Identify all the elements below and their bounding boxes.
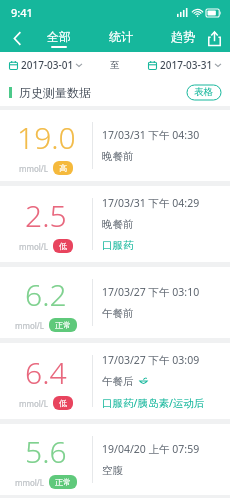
staticText: 17/03/27 下午 03:10: [102, 285, 200, 299]
staticText: 统计: [109, 29, 133, 44]
staticText: 19/04/20 上午 07:59: [102, 442, 200, 456]
staticText: mmol/L: [15, 477, 45, 488]
staticText: 口服药: [102, 239, 134, 252]
staticText: 正常: [55, 320, 71, 330]
staticText: 趋势: [171, 29, 195, 44]
staticText: 全部: [47, 29, 71, 44]
button[interactable]: 6.4: [0, 343, 230, 419]
staticText: 晚餐前: [102, 150, 134, 163]
button[interactable]: 统计: [105, 27, 137, 50]
staticText: mmol/L: [19, 398, 49, 409]
button[interactable]: 19.0: [0, 110, 230, 181]
staticText: 9:41: [11, 5, 33, 20]
staticText: 17/03/31 下午 04:30: [102, 128, 200, 142]
button[interactable]: 2017-03-01: [9, 55, 82, 75]
staticText: 晚餐前: [102, 218, 134, 231]
staticText: 5.6: [25, 431, 67, 472]
staticText: 6.2: [25, 274, 67, 315]
staticText: mmol/L: [19, 163, 49, 174]
staticText: 2017-03-01: [21, 58, 74, 72]
button[interactable]: Back: [0, 24, 34, 52]
staticText: 至: [110, 59, 120, 71]
staticText: mmol/L: [15, 320, 45, 331]
staticText: 6.4: [25, 352, 67, 393]
staticText: 2.5: [25, 195, 67, 236]
staticText: 低: [59, 241, 67, 251]
staticText: 口服药/胰岛素/运动后: [102, 396, 205, 410]
staticText: 17/03/31 下午 04:29: [102, 196, 200, 210]
staticText: 午餐前: [102, 307, 134, 320]
button[interactable]: 2017-03-31: [148, 55, 221, 75]
staticText: 17/03/27 下午 03:09: [102, 353, 200, 367]
button[interactable]: 全部: [43, 27, 75, 50]
button[interactable]: Share: [198, 24, 230, 52]
button[interactable]: 表格: [186, 84, 221, 100]
button[interactable]: 2.5: [0, 186, 230, 262]
button[interactable]: 趋势: [167, 27, 199, 50]
staticText: 低: [59, 398, 67, 408]
staticText: 2017-03-31: [160, 58, 213, 72]
staticText: 历史测量数据: [19, 85, 91, 100]
staticText: 午餐后: [102, 375, 134, 388]
button[interactable]: 5.6: [0, 424, 230, 495]
staticText: 高: [59, 163, 67, 173]
staticText: 正常: [55, 477, 71, 487]
staticText: 19.0: [17, 117, 76, 158]
staticText: 表格: [194, 86, 213, 98]
button[interactable]: 6.2: [0, 267, 230, 338]
staticText: 空腹: [102, 464, 123, 477]
staticText: mmol/L: [19, 241, 49, 252]
